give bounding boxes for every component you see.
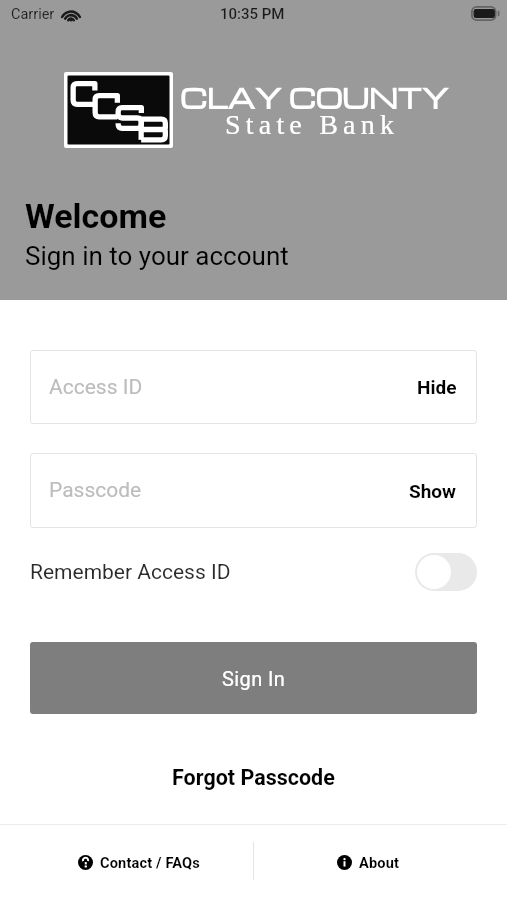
staticText: Sign in to your account [25,241,289,271]
button[interactable]: Show [389,468,477,514]
button[interactable]: Hide [397,364,477,410]
staticText: Show [409,480,457,502]
staticText: Contact / FAQs [100,854,200,871]
staticText: Remember Access ID [30,560,231,585]
button[interactable]: Passcode [30,453,477,528]
button[interactable]: Access ID [30,350,477,424]
staticText: Passcode [49,478,142,503]
button[interactable]: Forgot Passcode [158,760,349,795]
staticText: Access ID [49,375,143,400]
staticText: Hide [417,376,457,398]
button[interactable]: Sign In [30,642,477,714]
staticText: Welcome [25,196,167,236]
staticText: About [359,854,400,871]
staticText: State Bank [225,109,400,140]
button[interactable]: Contact / FAQs [24,825,253,900]
staticText: CLAY COUNTY [180,80,449,116]
button[interactable]: Remember Access ID toggle [415,553,477,591]
staticText: Carrier [11,6,55,23]
staticText: Forgot Passcode [172,765,335,790]
staticText: 10:35 PM [220,5,285,23]
button[interactable]: About [253,825,483,900]
staticText: Sign In [222,667,286,690]
